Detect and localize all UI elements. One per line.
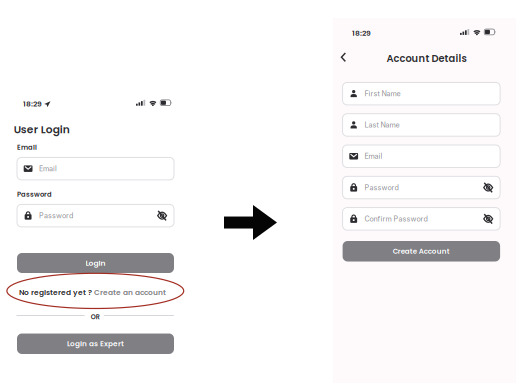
staticText: Confirm Password bbox=[365, 214, 428, 223]
button[interactable]: Login bbox=[17, 253, 174, 273]
button[interactable]: Create Account bbox=[343, 241, 500, 261]
button[interactable]: First Name bbox=[343, 82, 500, 105]
staticText: 18:29 bbox=[23, 98, 42, 109]
button[interactable]: Password bbox=[343, 176, 500, 199]
button[interactable]: Confirm Password bbox=[343, 208, 500, 230]
staticText: Email bbox=[39, 164, 57, 173]
staticText: Login as Expert bbox=[67, 339, 124, 349]
staticText: User Login bbox=[14, 122, 70, 137]
staticText: 18:29 bbox=[352, 28, 371, 38]
button[interactable]: Password bbox=[17, 204, 174, 227]
staticText: Password bbox=[365, 183, 399, 192]
staticText: Create Account bbox=[393, 246, 450, 256]
button[interactable]: Email bbox=[343, 145, 500, 167]
staticText: Password bbox=[39, 211, 73, 220]
staticText: Login bbox=[85, 258, 105, 268]
staticText: OR bbox=[91, 312, 100, 321]
staticText: No registered yet ? bbox=[19, 287, 92, 298]
button[interactable]: Email bbox=[17, 157, 174, 180]
staticText: Email bbox=[17, 142, 37, 152]
staticText: Password bbox=[17, 189, 52, 199]
button[interactable]: Back bbox=[333, 47, 353, 67]
staticText: Create an account bbox=[92, 287, 166, 298]
button[interactable]: Last Name bbox=[343, 114, 500, 136]
button[interactable]: Login as Expert bbox=[17, 333, 174, 354]
staticText: Account Details bbox=[386, 52, 466, 65]
staticText: First Name bbox=[365, 89, 401, 98]
staticText: Email bbox=[365, 152, 383, 161]
staticText: Last Name bbox=[365, 121, 400, 129]
